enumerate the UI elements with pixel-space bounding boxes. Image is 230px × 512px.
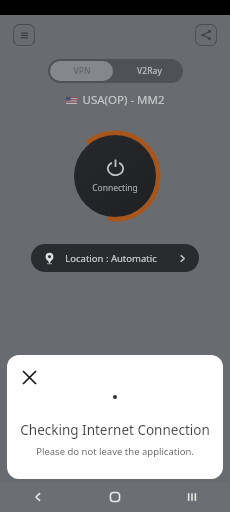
button[interactable]: Recents: [153, 482, 230, 512]
staticText: VPN: [73, 65, 91, 77]
staticText: USA(OP) - MM2: [82, 92, 165, 108]
button[interactable]: Connect: [69, 130, 161, 222]
button[interactable]: Menu: [13, 24, 35, 46]
staticText: Connecting: [92, 182, 138, 194]
button[interactable]: Location : Automatic: [31, 244, 199, 272]
button[interactable]: V2Ray: [115, 59, 183, 83]
button[interactable]: Close: [17, 365, 41, 389]
button[interactable]: Home: [76, 482, 153, 512]
button[interactable]: VPN: [50, 61, 113, 81]
staticText: Checking Internet Connection: [20, 421, 210, 439]
button[interactable]: Back: [0, 482, 76, 512]
staticText: Location : Automatic: [65, 252, 157, 265]
button[interactable]: Share: [195, 24, 217, 46]
staticText: V2Ray: [137, 65, 162, 77]
staticText: Please do not leave the application.: [36, 445, 194, 458]
